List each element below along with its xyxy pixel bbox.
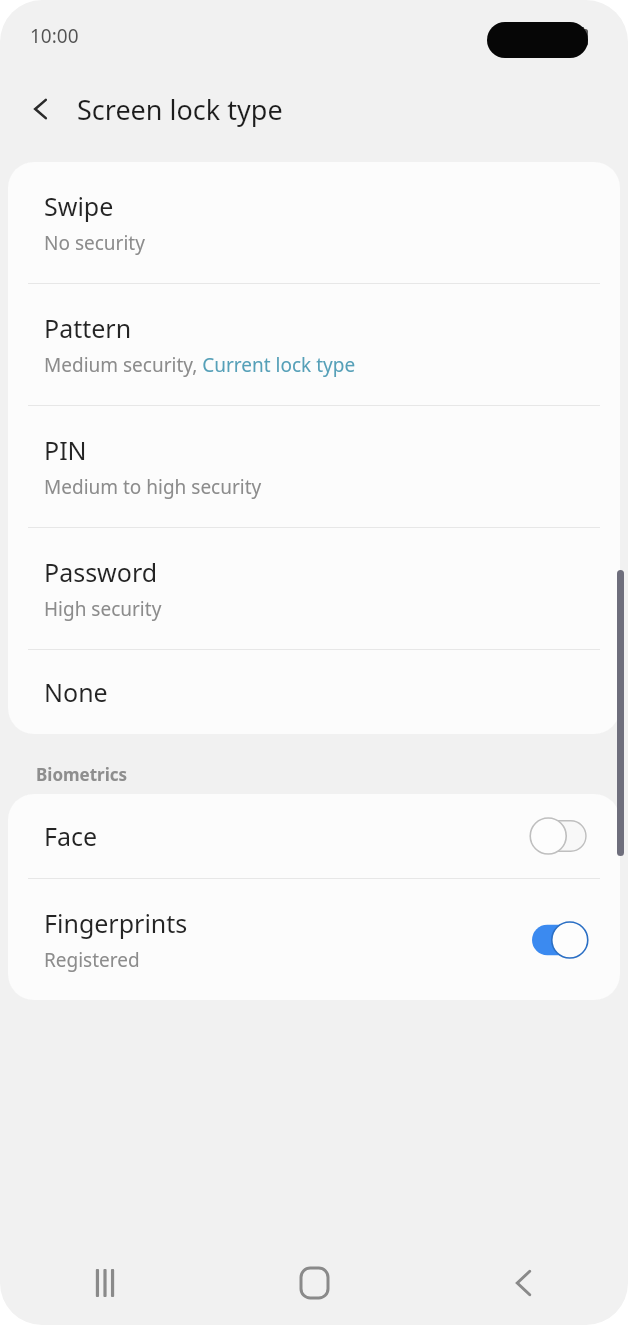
button[interactable]: Face switch, off [528, 815, 590, 857]
button[interactable]: None [8, 650, 620, 734]
staticText: Face [44, 819, 98, 853]
staticText: Medium security, Current lock type [44, 352, 356, 378]
staticText: Medium to high security [44, 474, 262, 500]
staticText: High security [44, 596, 162, 622]
button[interactable]: Home [210, 1241, 419, 1325]
button[interactable]: PIN [8, 406, 620, 527]
staticText: 10:00 [30, 23, 79, 49]
staticText: Biometrics [36, 763, 128, 786]
staticText: Fingerprints [44, 906, 188, 940]
staticText: Password [44, 555, 158, 589]
staticText: Pattern [44, 311, 132, 345]
staticText: Registered [44, 947, 140, 973]
button[interactable]: Swipe [8, 162, 620, 283]
staticText: Screen lock type [77, 91, 283, 128]
button[interactable]: Navigate up [17, 85, 65, 133]
button[interactable]: Recent apps [0, 1241, 210, 1325]
button[interactable]: Fingerprints switch, on [528, 919, 590, 961]
button[interactable]: Back [419, 1241, 628, 1325]
staticText: Swipe [44, 189, 114, 223]
button[interactable]: Password [8, 528, 620, 649]
button[interactable]: Face [8, 794, 620, 878]
staticText: No security [44, 230, 145, 256]
button[interactable]: Fingerprints [8, 879, 620, 1000]
button[interactable]: Pattern [8, 284, 620, 405]
staticText: PIN [44, 433, 87, 467]
staticText: None [44, 675, 108, 709]
